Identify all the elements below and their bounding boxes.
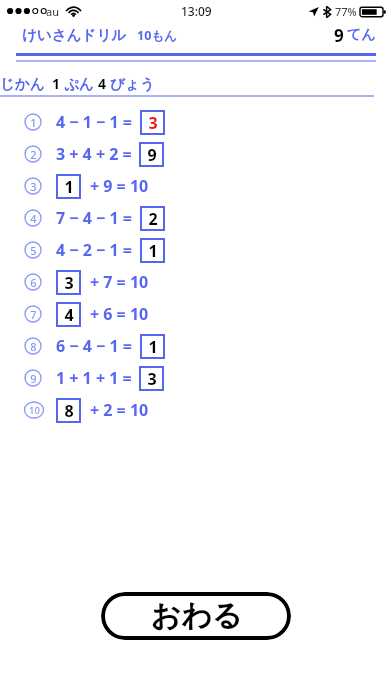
staticText: 10もん — [137, 27, 177, 44]
staticText: 1 — [30, 115, 37, 130]
staticText: 8 — [30, 339, 37, 354]
staticText: 7 — [30, 307, 37, 322]
button[interactable]: 1 — [140, 238, 165, 263]
staticText: 1 — [148, 240, 158, 262]
staticText: + 9 = 10 — [90, 175, 149, 197]
button[interactable]: 3 — [56, 270, 81, 295]
staticText: 3 — [30, 179, 37, 194]
staticText: 4 — [30, 211, 37, 226]
staticText: 8 — [64, 400, 74, 422]
staticText: ぷん — [64, 75, 94, 93]
staticText: 3 + 4 + 2 = — [56, 143, 132, 165]
staticText: 10 — [29, 404, 40, 417]
button[interactable]: おわる — [101, 592, 291, 640]
staticText: 13:09 — [181, 3, 212, 19]
button[interactable]: 1 — [140, 334, 165, 359]
button[interactable]: 1 — [0, 106, 392, 138]
staticText: 3 — [64, 272, 74, 294]
staticText: 3 — [147, 368, 157, 390]
staticText: おわる — [150, 597, 243, 635]
staticText: 3 — [148, 112, 158, 134]
button[interactable]: 5 — [0, 234, 392, 266]
button[interactable]: 2 — [140, 206, 165, 231]
button[interactable]: 9 — [0, 362, 392, 394]
staticText: 4 − 2 − 1 = — [56, 239, 133, 261]
staticText: 5 — [30, 243, 37, 258]
button[interactable]: 10 — [0, 394, 392, 426]
staticText: 9 — [147, 144, 157, 166]
staticText: 6 — [30, 275, 37, 290]
button[interactable]: 2 — [0, 138, 392, 170]
staticText: 4 − 1 − 1 = — [56, 111, 133, 133]
button[interactable]: 4 — [56, 302, 81, 327]
staticText: てん — [347, 26, 376, 44]
staticText: 9 — [334, 24, 344, 47]
staticText: 77% — [335, 4, 357, 19]
staticText: + 2 = 10 — [90, 399, 149, 421]
button[interactable]: 8 — [0, 330, 392, 362]
staticText: 2 — [30, 147, 37, 162]
button[interactable]: 4 — [0, 202, 392, 234]
button[interactable]: 8 — [56, 398, 81, 423]
staticText: + 7 = 10 — [90, 271, 149, 293]
button[interactable]: 6 — [0, 266, 392, 298]
staticText: 2 — [148, 208, 158, 230]
button[interactable]: 9 — [139, 142, 164, 167]
button[interactable]: 3 — [0, 170, 392, 202]
staticText: 1 — [64, 176, 74, 198]
staticText: 6 − 4 − 1 = — [56, 335, 133, 357]
staticText: 7 − 4 − 1 = — [56, 207, 133, 229]
staticText: 1 — [148, 336, 158, 358]
button[interactable]: 3 — [140, 110, 165, 135]
staticText: 4 — [98, 74, 107, 93]
staticText: 1 + 1 + 1 = — [56, 367, 132, 389]
button[interactable]: 1 — [56, 174, 81, 199]
staticText: 4 — [64, 304, 74, 326]
staticText: 1 — [52, 74, 61, 93]
staticText: びょう — [110, 75, 155, 93]
staticText: + 6 = 10 — [90, 303, 149, 325]
staticText: 9 — [30, 371, 37, 386]
button[interactable]: 7 — [0, 298, 392, 330]
staticText: au — [46, 4, 59, 19]
button[interactable]: 3 — [139, 366, 164, 391]
button[interactable]: けいさんドリル — [22, 26, 126, 44]
staticText: じかん — [0, 75, 45, 93]
